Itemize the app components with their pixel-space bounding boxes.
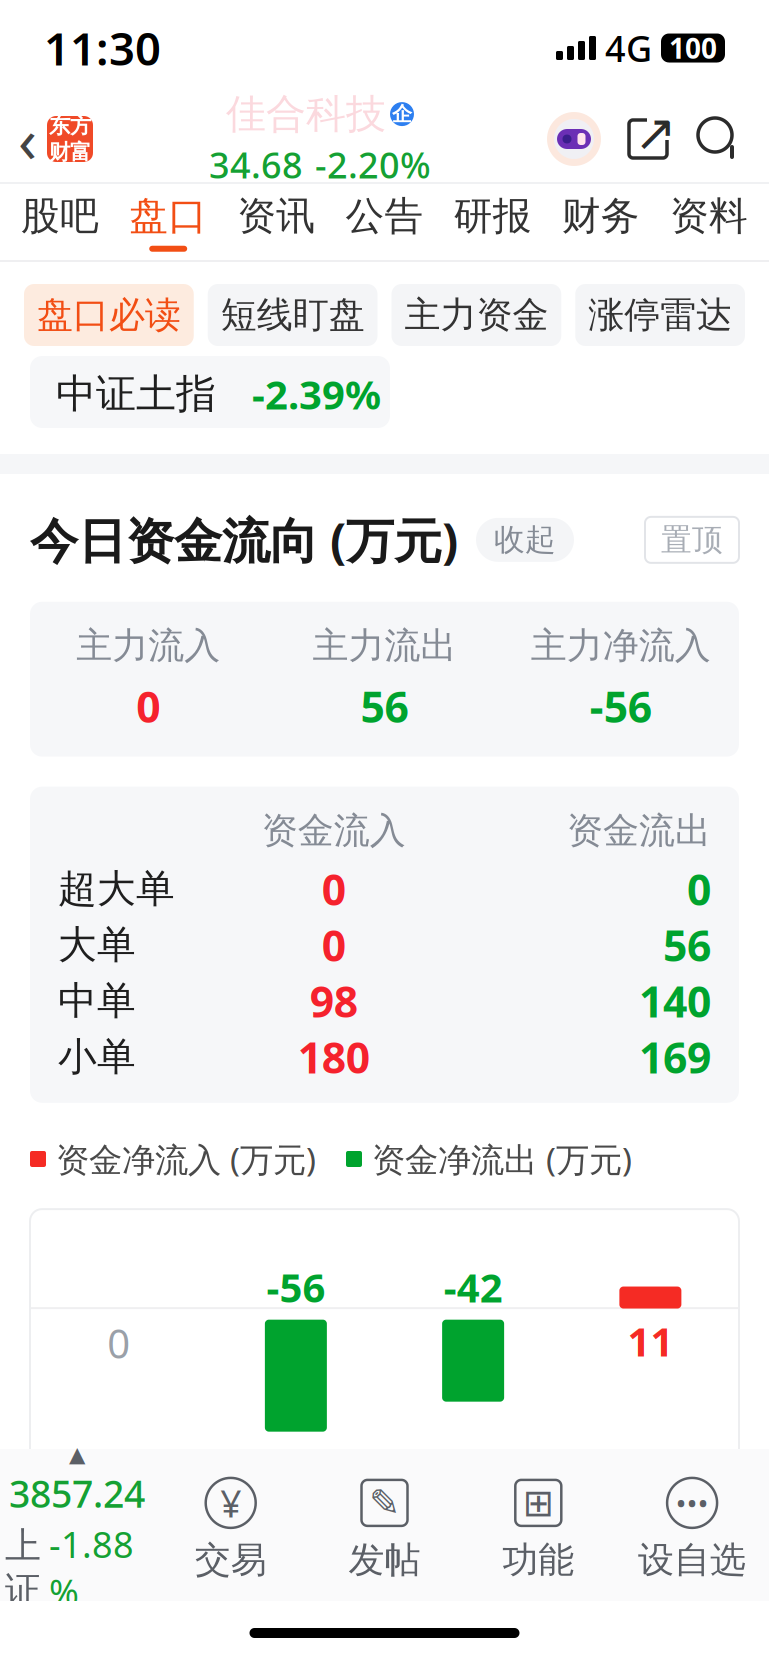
button[interactable]: 资料	[655, 184, 763, 260]
staticText: -56	[266, 1260, 325, 1314]
staticText: 盘口	[129, 192, 207, 240]
staticText: 佳合科技	[226, 89, 386, 139]
staticText: 资金净流入 (万元)	[56, 1137, 316, 1181]
button[interactable]: 返回	[0, 98, 93, 180]
staticText: 净超大	[65, 1445, 173, 1489]
staticText: -2.20%	[315, 141, 431, 188]
button[interactable]: 资讯	[222, 184, 330, 260]
button[interactable]: 分享	[625, 116, 671, 162]
staticText: 设自选	[638, 1538, 746, 1582]
button[interactable]: 公告	[330, 184, 438, 260]
staticText: 4G	[605, 24, 652, 72]
button[interactable]: 涨停雷达	[575, 284, 745, 346]
button[interactable]: ¥	[154, 1476, 308, 1582]
staticText: 净中单	[419, 1445, 527, 1489]
staticText: 中证土指	[56, 369, 216, 418]
staticText: 东方 财富	[49, 113, 91, 165]
staticText: ▲	[69, 1442, 85, 1466]
staticText: 净大单	[242, 1445, 350, 1489]
staticText: 169	[639, 1028, 711, 1085]
staticText: 今日资金流向 (万元)	[30, 508, 458, 572]
staticText: -1.88%	[49, 1520, 134, 1616]
staticText: 大单	[58, 921, 136, 969]
staticText: ⊞	[523, 1482, 554, 1524]
staticText: 主力资金	[404, 293, 548, 337]
staticText: 超大单	[58, 865, 175, 913]
staticText: 置顶	[661, 521, 723, 559]
staticText: 小单	[58, 1033, 136, 1081]
staticText: 发帖	[348, 1538, 420, 1582]
staticText: ✎	[369, 1482, 400, 1524]
staticText: 资金净流出 (万元)	[372, 1137, 632, 1181]
staticText: 34.68	[209, 141, 303, 188]
staticText: 资金流出	[567, 809, 711, 853]
staticText: -56	[590, 678, 652, 735]
button[interactable]: 置顶	[645, 517, 739, 563]
button[interactable]: 搜索	[695, 115, 743, 163]
staticText: 140	[639, 972, 711, 1029]
staticText: 交易	[195, 1538, 267, 1582]
staticText: 股吧	[21, 192, 99, 240]
staticText: 净小单	[596, 1445, 704, 1489]
button[interactable]: 短线盯盘	[208, 284, 378, 346]
button[interactable]: ⊞	[461, 1476, 615, 1582]
staticText: 主力净流入	[531, 624, 711, 668]
staticText: 56	[663, 916, 711, 973]
staticText: 56	[360, 678, 408, 735]
staticText: -2.39%	[252, 367, 381, 420]
button[interactable]: 收起	[476, 518, 574, 562]
staticText: ¥	[220, 1478, 241, 1528]
staticText: 主力资金趋势 (万元)	[30, 1611, 458, 1665]
staticText: 资料	[670, 192, 748, 240]
staticText: 功能	[502, 1538, 574, 1582]
button[interactable]: 上证指数	[0, 1442, 154, 1616]
button[interactable]: 盘口	[114, 184, 222, 260]
staticText: 0	[687, 860, 711, 917]
staticText: 3857.24	[9, 1468, 145, 1518]
staticText: 研报	[454, 192, 532, 240]
staticText: -42	[444, 1260, 503, 1314]
staticText: 资讯	[237, 192, 315, 240]
staticText: 盘口必读	[37, 293, 181, 337]
button[interactable]: ✎	[308, 1476, 461, 1582]
staticText: ↗	[634, 104, 676, 162]
staticText: 公告	[345, 192, 423, 240]
staticText: 11	[627, 1314, 673, 1368]
staticText: 收起	[494, 521, 556, 559]
staticText: 主力流出	[312, 624, 456, 668]
staticText: 短线盯盘	[221, 293, 365, 337]
staticText: 财务	[562, 192, 640, 240]
button[interactable]: •••	[615, 1476, 769, 1582]
button[interactable]: 收起	[514, 1621, 612, 1665]
staticText: 98	[310, 972, 358, 1029]
button[interactable]: 智能助手	[547, 112, 601, 166]
staticText: 11:30	[44, 18, 161, 78]
staticText: 资金流入	[262, 809, 406, 853]
staticText: ‹	[18, 98, 37, 180]
button[interactable]: 主力资金	[391, 284, 561, 346]
button[interactable]: 研报	[439, 184, 547, 260]
staticText: ?	[476, 1625, 488, 1661]
button[interactable]: 股吧	[6, 184, 114, 260]
staticText: 0	[107, 1316, 130, 1370]
staticText: 0	[136, 678, 160, 735]
staticText: 主力流入	[76, 624, 220, 668]
button[interactable]: 盘口必读	[24, 284, 194, 346]
staticText: 0	[322, 916, 346, 973]
staticText: 180	[298, 1028, 370, 1085]
staticText: 中单	[58, 977, 136, 1025]
staticText: 0	[322, 860, 346, 917]
staticText: •••	[676, 1483, 709, 1522]
staticText: 涨停雷达	[588, 293, 732, 337]
button[interactable]: 财务	[547, 184, 655, 260]
staticText: 企	[392, 102, 412, 126]
staticText: 100	[669, 29, 717, 67]
staticText: 上证	[5, 1524, 41, 1612]
